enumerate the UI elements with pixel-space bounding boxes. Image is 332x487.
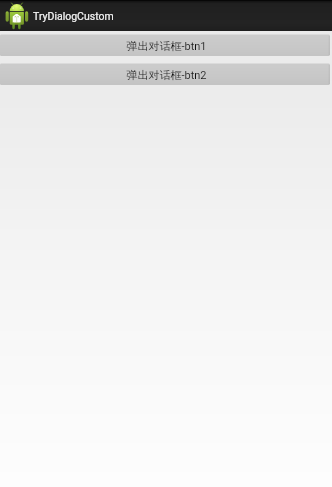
staticText: TryDialogCustom bbox=[33, 10, 114, 22]
staticText: 弹出对话框-btn2 bbox=[126, 68, 207, 82]
staticText: 弹出对话框-btn1 bbox=[126, 39, 207, 53]
button[interactable]: 弹出对话框-btn1 bbox=[0, 31, 332, 60]
button[interactable]: 弹出对话框-btn2 bbox=[0, 60, 332, 89]
